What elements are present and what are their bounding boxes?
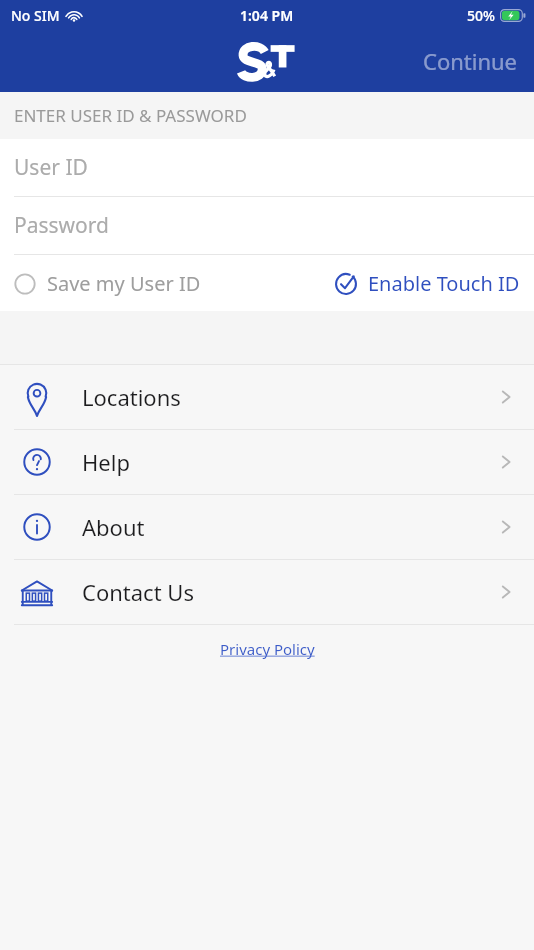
staticText: Continue — [423, 46, 518, 76]
staticText: Help — [82, 447, 130, 477]
button[interactable]: Enable Touch ID — [326, 264, 534, 303]
staticText: User ID — [14, 153, 88, 182]
staticText: Contact Us — [82, 577, 194, 607]
staticText: Password — [14, 211, 109, 240]
button[interactable]: Password — [0, 197, 534, 254]
button[interactable]: Help — [0, 430, 534, 494]
button[interactable]: Contact Us — [0, 560, 534, 624]
button[interactable]: Continue — [407, 38, 534, 84]
staticText: Enable Touch ID — [368, 270, 520, 297]
button[interactable]: Save my User ID — [0, 264, 209, 303]
button[interactable]: Locations — [0, 365, 534, 429]
button[interactable]: About — [0, 495, 534, 559]
staticText: Save my User ID — [47, 270, 201, 297]
staticText: 1:04 PM — [240, 6, 294, 25]
button[interactable]: User ID — [0, 139, 534, 196]
staticText: No SIM — [11, 6, 60, 25]
staticText: About — [82, 512, 145, 542]
button[interactable]: Privacy Policy — [210, 633, 325, 665]
staticText: 50% — [467, 6, 495, 25]
staticText: ENTER USER ID & PASSWORD — [14, 104, 247, 127]
staticText: Locations — [82, 382, 181, 412]
staticText: Privacy Policy — [220, 639, 315, 659]
